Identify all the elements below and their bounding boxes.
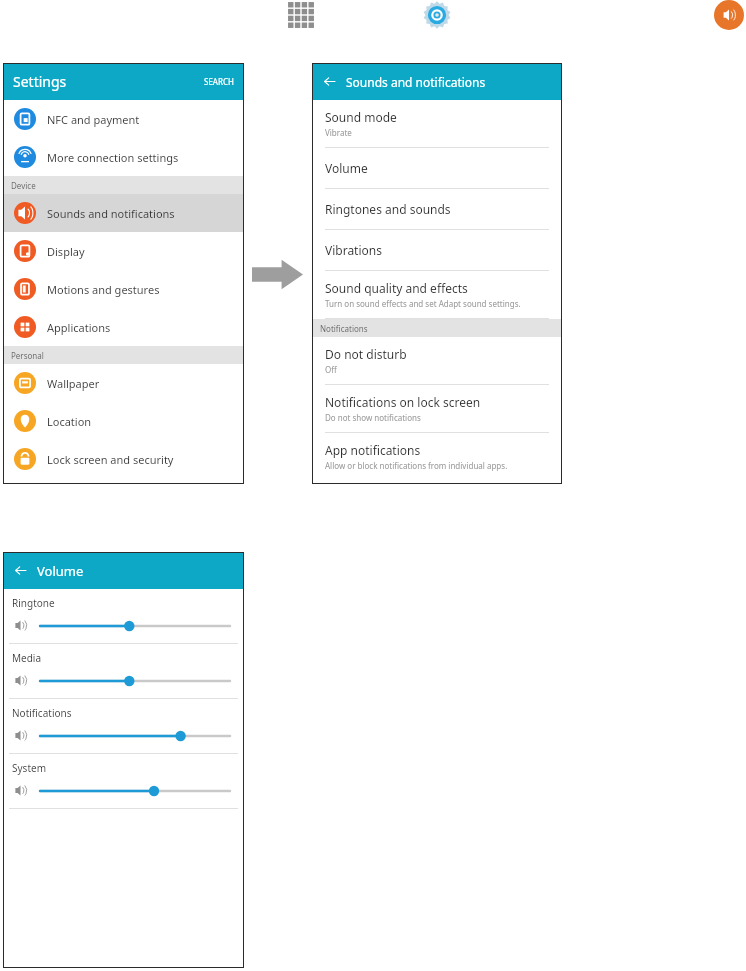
button[interactable]: Sounds and notifications xyxy=(714,0,744,30)
button[interactable]: Settings xyxy=(422,0,452,30)
staticText: Sound mode xyxy=(325,109,397,125)
staticText: SEARCH xyxy=(204,76,234,87)
button[interactable]: Location xyxy=(3,402,244,440)
button[interactable]: More connection settings xyxy=(3,138,244,176)
button[interactable]: Sounds and notifications xyxy=(3,194,244,232)
staticText: Ringtone xyxy=(12,596,55,610)
staticText: Sounds and notifications xyxy=(47,206,175,221)
staticText: Notifications xyxy=(320,323,368,334)
staticText: Settings xyxy=(13,72,67,91)
button[interactable]: Motions and gestures xyxy=(3,270,244,308)
staticText: Lock screen and security xyxy=(47,452,174,467)
button[interactable]: Notifications xyxy=(3,699,244,754)
button[interactable]: Back xyxy=(14,564,27,577)
staticText: Ringtones and sounds xyxy=(325,201,451,217)
staticText: Device xyxy=(11,180,36,191)
staticText: NFC and payment xyxy=(47,112,140,127)
button[interactable]: Sound mode xyxy=(312,100,562,148)
staticText: Notifications xyxy=(12,706,72,720)
staticText: App notifications xyxy=(325,442,421,458)
other: Back xyxy=(14,564,27,577)
button[interactable]: Apps grid xyxy=(288,2,314,28)
button[interactable]: Wallpaper xyxy=(3,364,244,402)
staticText: Personal xyxy=(11,350,44,361)
staticText: Allow or block notifications from indivi… xyxy=(325,460,508,471)
staticText: Applications xyxy=(47,320,111,335)
button[interactable]: App notifications xyxy=(312,433,562,480)
staticText: Notifications on lock screen xyxy=(325,394,481,410)
button[interactable]: Volume xyxy=(312,148,562,189)
staticText: Volume xyxy=(37,562,84,580)
button[interactable]: Media xyxy=(3,644,244,699)
staticText: Motions and gestures xyxy=(47,282,160,297)
button[interactable]: SEARCH xyxy=(204,76,234,87)
staticText: Off xyxy=(325,364,337,375)
button[interactable]: NFC and payment xyxy=(3,100,244,138)
staticText: Sound quality and effects xyxy=(325,280,468,296)
staticText: Display xyxy=(47,244,85,259)
staticText: Turn on sound effects and set Adapt soun… xyxy=(325,298,521,309)
staticText: Location xyxy=(47,414,92,429)
staticText: Do not disturb xyxy=(325,346,407,362)
button[interactable]: Display xyxy=(3,232,244,270)
button[interactable]: Vibrations xyxy=(312,230,562,271)
other: Back xyxy=(323,75,336,88)
button[interactable]: Ringtones and sounds xyxy=(312,189,562,230)
staticText: System xyxy=(12,761,46,775)
button[interactable]: Applications xyxy=(3,308,244,346)
staticText: Media xyxy=(12,651,42,665)
button[interactable]: System xyxy=(3,754,244,809)
staticText: Vibrations xyxy=(325,242,382,258)
staticText: Vibrate xyxy=(325,127,352,138)
staticText: More connection settings xyxy=(47,150,179,165)
staticText: Sounds and notifications xyxy=(346,74,486,90)
staticText: Volume xyxy=(325,160,368,176)
button[interactable]: Ringtone xyxy=(3,589,244,644)
button[interactable]: Do not disturb xyxy=(312,337,562,385)
button[interactable]: Sound quality and effects xyxy=(312,271,562,319)
button[interactable]: Lock screen and security xyxy=(3,440,244,478)
staticText: Wallpaper xyxy=(47,376,100,391)
button[interactable]: Notifications on lock screen xyxy=(312,385,562,433)
staticText: Do not show notifications xyxy=(325,412,421,423)
button[interactable]: Back xyxy=(323,75,336,88)
